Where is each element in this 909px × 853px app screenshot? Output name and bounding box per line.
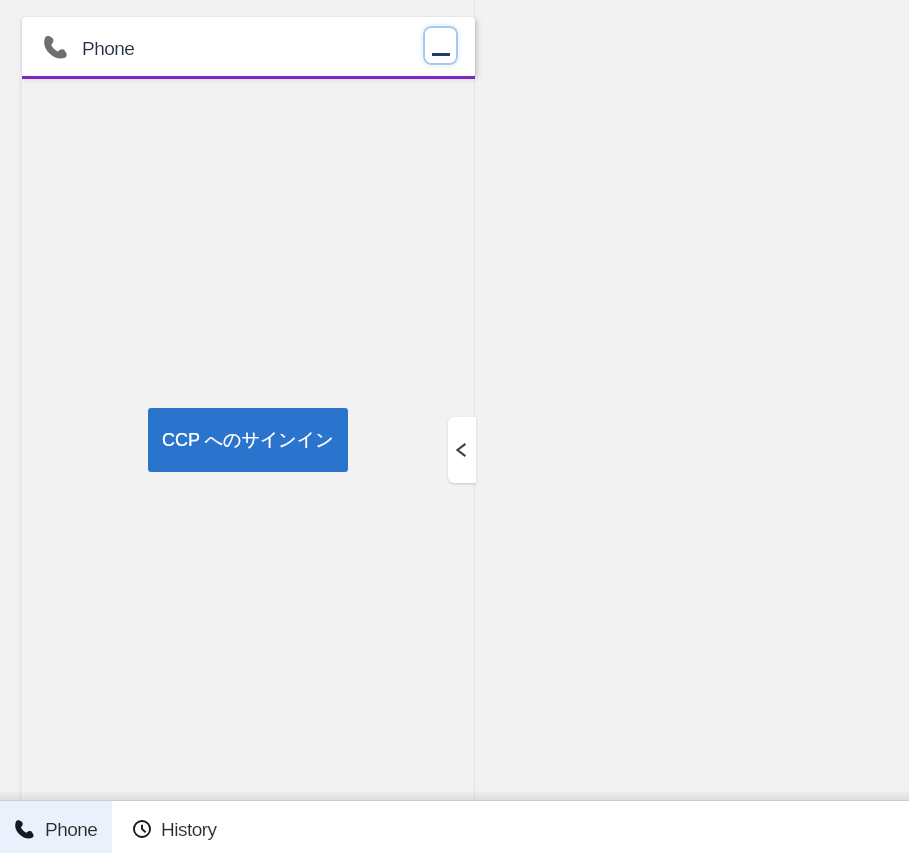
staticText: Phone <box>82 38 135 59</box>
staticText: History <box>161 819 217 840</box>
button[interactable]: Minimize <box>423 26 458 65</box>
button[interactable]: Phone <box>0 801 112 853</box>
staticText: CCP へのサインイン <box>162 429 334 452</box>
button[interactable]: Phone <box>22 17 475 77</box>
button[interactable]: CCP へのサインイン <box>148 408 348 472</box>
button[interactable]: History <box>112 801 272 853</box>
button[interactable]: Collapse panel <box>448 417 476 483</box>
staticText: Phone <box>45 819 98 840</box>
